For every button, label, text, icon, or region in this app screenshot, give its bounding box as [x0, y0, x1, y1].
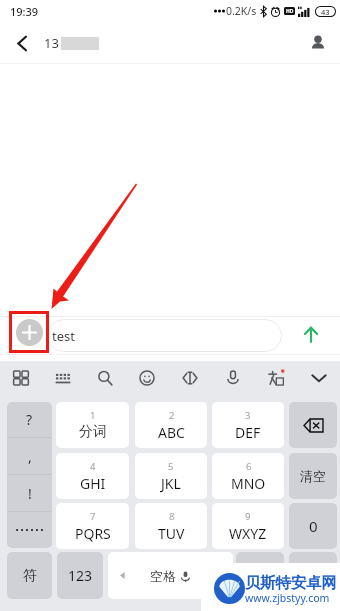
staticText: ?	[26, 410, 33, 429]
button[interactable]: 符	[7, 552, 52, 599]
button[interactable]: Apps	[0, 361, 42, 395]
staticText: TUV	[158, 524, 185, 543]
button[interactable]: 0	[289, 503, 337, 549]
staticText: WXYZ	[229, 524, 267, 543]
staticText: GHI	[80, 474, 106, 493]
staticText: 6	[246, 460, 252, 473]
button[interactable]: Send	[293, 318, 329, 352]
staticText: ,	[28, 447, 32, 466]
staticText: ABC	[158, 423, 185, 442]
button[interactable]: Clipboard	[168, 361, 211, 395]
staticText: 4	[90, 460, 96, 473]
button[interactable]: Search	[84, 361, 126, 395]
staticText: 空格	[150, 568, 176, 584]
button[interactable]: Hide keyboard	[297, 361, 340, 395]
staticText: JKL	[161, 474, 181, 493]
staticText: 符	[23, 567, 37, 585]
button[interactable]: 1	[56, 402, 129, 448]
staticText: 43	[321, 7, 330, 16]
staticText: MNO	[231, 474, 266, 493]
button[interactable]: !	[7, 475, 52, 511]
staticText: PQRS	[75, 524, 111, 543]
staticText: 贝斯特安卓网	[245, 573, 337, 592]
staticText: 2	[169, 409, 175, 422]
button[interactable]: 5	[135, 453, 207, 499]
button[interactable]: 空格	[108, 552, 233, 599]
button[interactable]: 。，	[236, 552, 284, 599]
button[interactable]: 清空	[289, 453, 337, 499]
staticText: 7	[90, 510, 96, 523]
button[interactable]: 8	[135, 503, 207, 549]
staticText: 3	[245, 409, 251, 422]
button[interactable]: Translate	[254, 361, 297, 395]
staticText: test	[52, 327, 75, 345]
staticText: HD	[286, 8, 294, 15]
button[interactable]: 7	[56, 503, 129, 549]
staticText: www.zjbstyy.com	[245, 591, 330, 605]
staticText: 0	[309, 516, 318, 536]
staticText: DEF	[235, 423, 261, 442]
button[interactable]: Keyboard layout	[42, 361, 84, 395]
staticText: 0.2K/s	[226, 4, 257, 18]
staticText: 8	[169, 510, 175, 523]
button[interactable]: Enter	[289, 552, 337, 599]
staticText: 1	[90, 409, 96, 422]
button[interactable]: 6	[212, 453, 284, 499]
staticText: 5	[168, 460, 174, 473]
staticText: 分词	[79, 423, 107, 441]
button[interactable]: test	[47, 319, 282, 352]
staticText: 19:39	[10, 4, 39, 19]
button[interactable]: 2	[135, 402, 207, 448]
button[interactable]: 123	[57, 552, 103, 599]
button[interactable]: ?	[7, 402, 52, 437]
button[interactable]: Voice input	[211, 361, 254, 395]
button[interactable]: ,	[7, 438, 52, 474]
staticText: 123	[68, 566, 93, 585]
staticText: 13	[44, 34, 59, 52]
button[interactable]: Backspace	[289, 402, 337, 448]
staticText: 清空	[300, 468, 326, 484]
button[interactable]: 4	[56, 453, 129, 499]
button[interactable]: Emoji	[126, 361, 168, 395]
staticText: 9	[245, 510, 251, 523]
button[interactable]: 9	[212, 503, 284, 549]
button[interactable]: Contact profile	[296, 22, 340, 64]
button[interactable]: Add attachment	[16, 319, 43, 346]
staticText: 。，	[249, 569, 271, 583]
button[interactable]: Back	[0, 22, 44, 64]
staticText: !	[28, 484, 32, 503]
button[interactable]	[7, 512, 52, 548]
button[interactable]: 3	[212, 402, 284, 448]
